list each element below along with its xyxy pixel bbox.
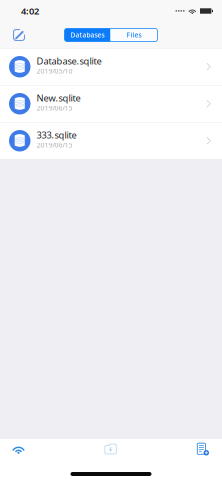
staticText: New.sqlite [36,92,80,104]
button[interactable]: Import file [95,442,126,456]
staticText: 333.sqlite [36,129,76,141]
button[interactable]: Files [110,28,157,41]
staticText: 2019/05/10 [36,67,72,75]
button[interactable]: Compose [6,23,32,47]
staticText: Files [126,31,141,39]
button[interactable]: 333.sqlite [0,122,222,159]
staticText: Databases [70,31,104,39]
button[interactable]: Database.sqlite [0,48,222,85]
button[interactable]: New.sqlite [0,85,222,122]
button[interactable]: New document [187,442,218,456]
staticText: 2019/06/15 [36,104,72,112]
button[interactable]: Wi-Fi transfer [3,442,34,456]
button[interactable]: Databases [64,28,110,41]
staticText: 2019/06/15 [36,141,72,149]
staticText: 4:02 [21,5,39,17]
staticText: Database.sqlite [36,55,101,67]
